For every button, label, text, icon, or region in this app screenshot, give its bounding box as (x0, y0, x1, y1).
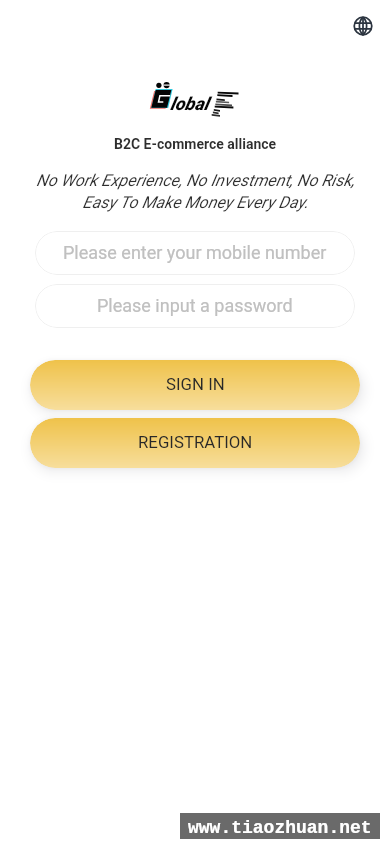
staticText: lobal (170, 93, 209, 114)
button[interactable]: Language (345, 8, 381, 44)
staticText: B2C E-commerce alliance (114, 136, 277, 152)
staticText: SIGN IN (166, 374, 225, 394)
staticText: No Work Experience, No Investment, No Ri… (36, 171, 355, 212)
staticText: Please enter your mobile number (63, 242, 327, 263)
button[interactable]: SIGN IN (30, 360, 360, 410)
button[interactable]: Please input a password (35, 284, 355, 328)
button[interactable]: Please enter your mobile number (35, 231, 355, 275)
staticText: REGISTRATION (138, 432, 253, 452)
button[interactable]: REGISTRATION (30, 418, 360, 468)
staticText: Please input a password (97, 295, 293, 316)
staticText: www.tiaozhuan.net (188, 818, 372, 838)
